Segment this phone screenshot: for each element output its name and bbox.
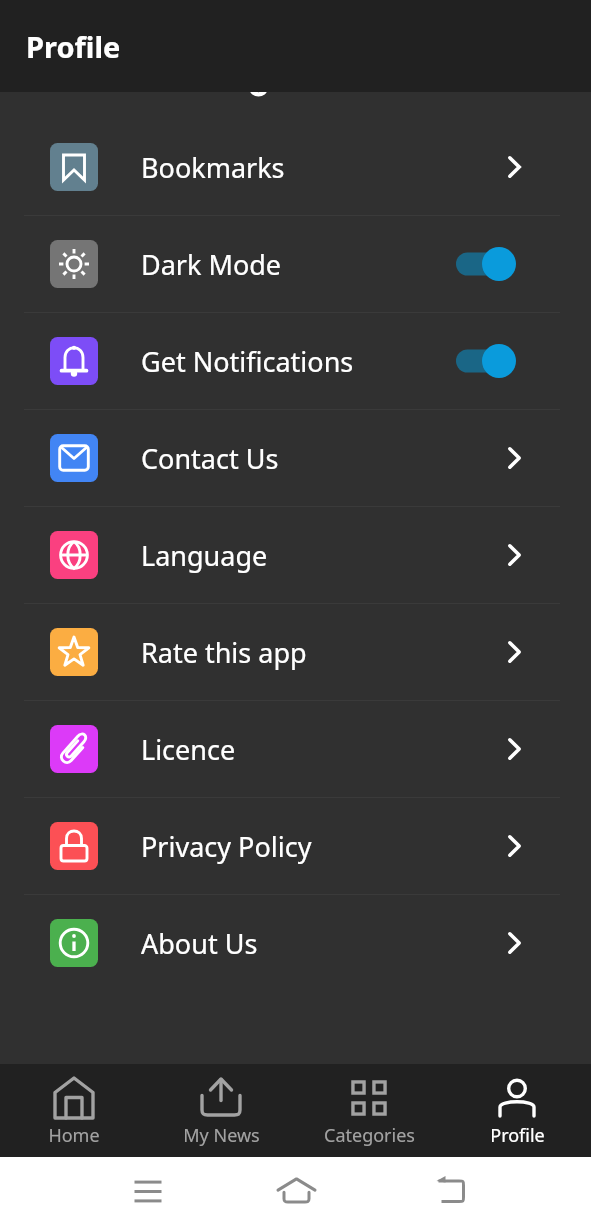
staticText: Categories [324, 1123, 415, 1148]
button[interactable]: Open Language [497, 533, 521, 577]
button[interactable]: Dark Mode [0, 216, 591, 312]
button[interactable]: About Us [0, 895, 591, 991]
button[interactable]: Home [0, 1064, 147, 1157]
button[interactable]: Open About Us [497, 921, 521, 965]
staticText: My News [183, 1123, 260, 1148]
button[interactable]: Get Notifications [0, 313, 591, 409]
staticText: Bookmarks [141, 149, 497, 186]
button[interactable]: Language [0, 507, 591, 603]
button[interactable]: Toggle Dark Mode [456, 242, 521, 286]
staticText: Language [141, 537, 497, 574]
staticText: Home [48, 1123, 100, 1148]
button[interactable]: Categories [295, 1064, 443, 1157]
staticText: Contact Us [141, 440, 497, 477]
staticText: Profile [26, 27, 121, 66]
staticText: Dark Mode [141, 246, 456, 283]
staticText: Rate this app [141, 634, 497, 671]
staticText: Privacy Policy [141, 828, 497, 865]
button[interactable]: Privacy Policy [0, 798, 591, 894]
button[interactable]: Contact Us [0, 410, 591, 506]
staticText: Licence [141, 731, 497, 768]
button[interactable]: Open Privacy Policy [497, 824, 521, 868]
staticText: Profile [490, 1123, 545, 1148]
button[interactable]: Open Contact Us [497, 436, 521, 480]
button[interactable]: Open Bookmarks [497, 145, 521, 189]
button[interactable]: Licence [0, 701, 591, 797]
button[interactable]: Profile [443, 1064, 591, 1157]
button[interactable]: Bookmarks [0, 119, 591, 215]
button[interactable]: My News [147, 1064, 295, 1157]
button[interactable]: Open Licence [497, 727, 521, 771]
button[interactable]: Toggle Get Notifications [456, 339, 521, 383]
staticText: About Us [141, 925, 497, 962]
staticText: Get Notifications [141, 343, 456, 380]
button[interactable]: Rate this app [0, 604, 591, 700]
button[interactable]: Open Rate this app [497, 630, 521, 674]
